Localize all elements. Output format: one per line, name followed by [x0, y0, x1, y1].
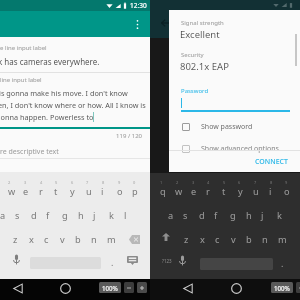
button[interactable]: 100% [99, 282, 121, 293]
button[interactable]: Zoom out [124, 282, 134, 293]
staticText: v [231, 233, 236, 246]
staticText: 7 [254, 180, 257, 185]
staticText: a [0, 209, 6, 222]
staticText: d [199, 209, 205, 222]
staticText: 2 [176, 180, 179, 185]
staticText: 9 [285, 180, 288, 185]
staticText: re descriptive text [0, 147, 59, 157]
button[interactable]: Zoom out [296, 282, 300, 293]
button[interactable]: Show password [177, 118, 297, 136]
staticText: Excellent [180, 28, 220, 41]
staticText: 3 [192, 180, 195, 185]
staticText: d [31, 209, 37, 222]
staticText: y [238, 185, 243, 198]
staticText: j [93, 209, 96, 222]
button[interactable]: 100% [271, 282, 293, 293]
staticText: Show password [201, 122, 253, 132]
staticText: n [91, 233, 97, 246]
staticText: g [230, 209, 236, 222]
staticText: k [109, 209, 114, 222]
staticText: z [184, 233, 189, 246]
staticText: c [215, 233, 220, 246]
staticText: e line input label [0, 44, 47, 52]
staticText: 0 [133, 180, 136, 185]
staticText: r [206, 185, 210, 198]
staticText: is gonna make his move. I don't know [0, 88, 128, 98]
button[interactable]: Switch keyboard [127, 256, 138, 265]
staticText: 5 [223, 180, 226, 185]
staticText: v [60, 233, 65, 246]
staticText: s [183, 209, 188, 222]
staticText: 4 [40, 180, 43, 185]
staticText: line input label [0, 76, 42, 84]
staticText: n [262, 233, 268, 246]
staticText: k has cameras everywhere. [0, 56, 100, 67]
button[interactable]: ?123 [157, 256, 176, 266]
staticText: h [246, 209, 252, 222]
staticText: 2 [8, 180, 11, 185]
staticText: u [86, 185, 92, 198]
staticText: r [39, 185, 43, 198]
staticText: Show advanced options [201, 144, 279, 154]
staticText: w [175, 185, 183, 198]
staticText: z [13, 233, 18, 246]
button[interactable]: Voice input [178, 255, 187, 266]
staticText: . [111, 256, 114, 268]
staticText: x [200, 233, 205, 246]
staticText: 802.1x EAP [180, 60, 229, 73]
staticText: 7 [86, 180, 89, 185]
button[interactable]: Backspace [129, 235, 140, 244]
staticText: 6 [238, 180, 241, 185]
staticText: e [191, 185, 197, 198]
button[interactable]: Back [13, 283, 23, 294]
staticText: 8 [102, 180, 105, 185]
staticText: h [78, 209, 84, 222]
staticText: b [75, 233, 81, 246]
button[interactable]: CONNECT [249, 152, 294, 171]
staticText: m [107, 233, 116, 246]
staticText: Password [181, 87, 209, 95]
staticText: Security [181, 51, 204, 59]
staticText: 4 [207, 180, 210, 185]
staticText: 1 [160, 180, 163, 185]
staticText: 100% [274, 284, 290, 292]
staticText: e [23, 185, 29, 198]
staticText: c [44, 233, 49, 246]
staticText: 12:30 [130, 1, 147, 10]
staticText: k [277, 209, 282, 222]
staticText: . [281, 257, 284, 269]
button[interactable]: Voice input [12, 254, 21, 265]
staticText: w [8, 185, 16, 198]
staticText: 119 / 120 [0, 132, 142, 140]
staticText: 100% [102, 284, 118, 292]
staticText: i [269, 185, 272, 198]
staticText: g [62, 209, 68, 222]
staticText: u [253, 185, 259, 198]
button[interactable]: Back [183, 283, 193, 294]
staticText: b [246, 233, 252, 246]
staticText: 5 [55, 180, 58, 185]
staticText: 3 [24, 180, 27, 185]
staticText: s [15, 209, 20, 222]
staticText: m [278, 233, 287, 246]
staticText: ?123 [162, 258, 172, 264]
staticText: en, I don't know where or how. All I kno… [0, 100, 146, 110]
staticText: f [46, 209, 50, 222]
button[interactable]: Show advanced options [177, 140, 297, 158]
button[interactable]: More options [129, 16, 145, 32]
staticText: j [261, 209, 264, 222]
button[interactable]: Home [60, 283, 71, 294]
staticText: CONNECT [255, 157, 288, 167]
button[interactable]: Zoom in [137, 282, 147, 293]
button[interactable]: Back [160, 17, 172, 29]
staticText: q [160, 185, 166, 198]
button[interactable]: Home [231, 283, 242, 294]
staticText: t [54, 185, 58, 198]
staticText: l [124, 209, 127, 222]
staticText: 9 [118, 180, 121, 185]
staticText: y [70, 185, 75, 198]
button[interactable]: Shift [162, 233, 170, 241]
staticText: o [117, 185, 123, 198]
